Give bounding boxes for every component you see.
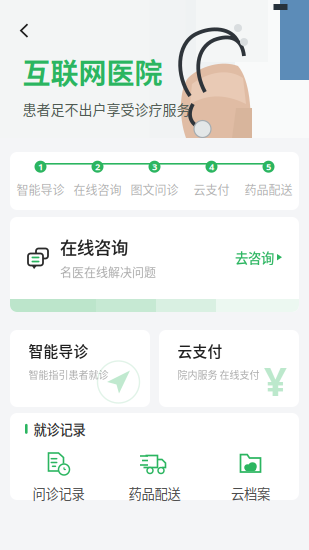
staticText: ¥ xyxy=(264,354,287,407)
button[interactable]: 在线咨询 xyxy=(10,217,299,312)
staticText: 智能导诊 xyxy=(28,340,88,361)
staticText: 药品配送 xyxy=(128,483,180,503)
staticText: 4 xyxy=(209,160,214,173)
staticText: 名医在线解决问题 xyxy=(60,263,156,281)
staticText: 药品配送 xyxy=(244,181,292,198)
staticText: 图文问诊 xyxy=(130,181,178,198)
staticText: 2 xyxy=(95,160,100,173)
staticText: 在线咨询 xyxy=(73,181,121,198)
button[interactable]: ¥ xyxy=(159,330,299,407)
staticText: 在线咨询 xyxy=(60,234,128,259)
staticText: 云支付 xyxy=(193,181,229,198)
staticText: 智能导诊 xyxy=(16,181,64,198)
staticText: 问诊记录 xyxy=(32,483,84,503)
staticText: 云档案 xyxy=(231,483,270,503)
staticText: 智能指引患者就诊 xyxy=(28,367,108,382)
button[interactable]: Back xyxy=(13,17,35,44)
button[interactable]: 问诊记录 xyxy=(10,451,106,503)
staticText: 3 xyxy=(152,160,157,173)
staticText: 互联网医院 xyxy=(22,51,162,92)
staticText: 去咨询 xyxy=(235,248,274,267)
button[interactable]: 智能导诊 xyxy=(10,330,150,407)
button[interactable]: 药品配送 xyxy=(106,451,202,503)
staticText: 患者足不出户享受诊疗服务 xyxy=(22,99,190,119)
staticText: 院内服务 在线支付 xyxy=(177,367,259,382)
staticText: 云支付 xyxy=(177,340,222,361)
staticText: 1 xyxy=(38,160,43,173)
button[interactable]: 云档案 xyxy=(202,451,298,503)
staticText: 就诊记录 xyxy=(34,419,86,438)
staticText: 5 xyxy=(266,160,271,173)
